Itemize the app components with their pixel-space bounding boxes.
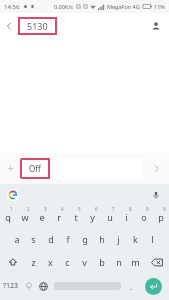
staticText: a [14,233,20,245]
staticText: c [65,256,70,268]
button[interactable]: s [25,228,42,250]
button[interactable]: Voice input [149,188,163,202]
staticText: i [125,211,128,223]
staticText: j [117,233,120,245]
button[interactable]: i [118,205,135,228]
staticText: w [21,211,29,223]
staticText: 2 [27,206,30,212]
staticText: 0.00K/s [54,3,73,10]
staticText: e [39,211,45,223]
button[interactable]: Off [20,158,143,179]
button[interactable]: Back [0,13,17,38]
button[interactable]: k [127,228,144,250]
staticText: h [99,233,105,245]
button[interactable]: ?123 [0,274,22,298]
button[interactable]: e [33,205,50,228]
button[interactable]: f [59,228,76,250]
button[interactable]: c [59,250,76,274]
staticText: ?123 [3,281,19,291]
button[interactable]: Google search [5,187,20,202]
button[interactable]: y [84,205,101,228]
staticText: 5 [78,206,81,212]
staticText: 7 [112,206,115,212]
button[interactable]: r [50,205,67,228]
button[interactable]: Attach [0,153,20,184]
button[interactable]: w [16,205,33,228]
button[interactable]: j [110,228,127,250]
button[interactable]: l [144,228,161,250]
staticText: MegaFon 4G [107,3,140,10]
staticText: 0 [163,206,166,212]
staticText: v [82,256,87,268]
button[interactable]: o [135,205,152,228]
button[interactable]: t [67,205,84,228]
button[interactable]: Emoji [22,274,36,298]
staticText: g [82,233,88,245]
staticText: t [74,211,78,223]
staticText: 14:56 [4,3,20,11]
staticText: u [107,211,113,223]
button[interactable]: 5130 [18,17,57,35]
staticText: r [57,211,61,223]
button[interactable]: q [0,205,16,228]
staticText: p [158,211,164,223]
staticText: 3 [44,206,47,212]
button[interactable]: g [76,228,93,250]
staticText: d [48,233,54,245]
staticText: f [66,233,70,245]
staticText: b [99,256,105,268]
staticText: x [48,256,53,268]
staticText: q [5,211,11,223]
button[interactable]: h [93,228,110,250]
button[interactable]: Enter [145,278,162,295]
staticText: o [141,211,147,223]
staticText: k [133,233,138,245]
button[interactable]: x [42,250,59,274]
button[interactable]: Contact details [143,13,169,38]
staticText: n [116,256,122,268]
button[interactable]: m [127,250,144,274]
staticText: 9 [146,206,149,212]
button[interactable]: a [8,228,25,250]
button[interactable]: . [124,274,138,298]
staticText: 11% [154,3,165,10]
button[interactable]: Backspace [144,250,169,274]
staticText: 1 [10,206,13,212]
staticText: Off [29,163,41,174]
staticText: . [130,281,133,292]
button[interactable]: u [101,205,118,228]
staticText: m [131,256,140,268]
staticText: z [31,256,36,268]
staticText: 6 [95,206,98,212]
button[interactable]: d [42,228,59,250]
staticText: 8 [129,206,132,212]
button[interactable]: Change language [36,274,51,298]
staticText: y [90,211,95,223]
button[interactable]: b [93,250,110,274]
button[interactable]: p [152,205,169,228]
staticText: 4 [61,206,64,212]
button[interactable]: Send [143,153,169,184]
button[interactable]: n [110,250,127,274]
staticText: 5130 [27,20,48,32]
button[interactable]: Shift [0,250,25,274]
staticText: l [151,233,154,245]
button[interactable]: z [25,250,42,274]
button[interactable]: v [76,250,93,274]
staticText: s [31,233,36,245]
